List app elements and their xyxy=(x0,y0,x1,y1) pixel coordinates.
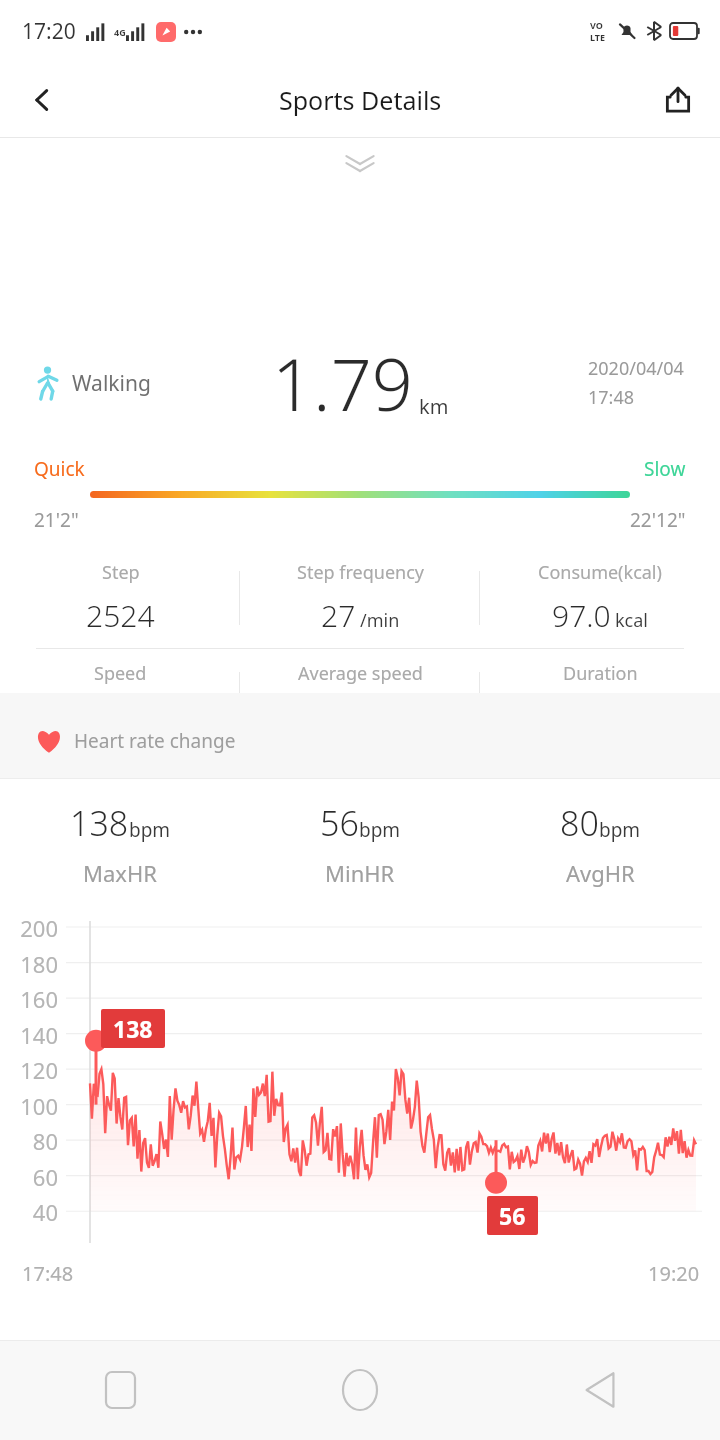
button[interactable]: Share xyxy=(650,72,706,128)
button[interactable]: Recents xyxy=(0,1340,240,1440)
button[interactable]: Expand xyxy=(332,146,388,182)
staticText: 2020/04/04 xyxy=(588,356,684,381)
staticText: 2524 xyxy=(86,595,155,636)
staticText: km xyxy=(419,393,449,420)
staticText: AvgHR xyxy=(566,858,635,888)
staticText: MaxHR xyxy=(83,858,157,888)
staticText: Average speed xyxy=(298,661,423,686)
staticText: 19:20 xyxy=(648,1260,700,1287)
staticText: 17:48 xyxy=(588,385,635,410)
staticText: 40 xyxy=(0,1197,58,1227)
staticText: kcal xyxy=(615,608,648,633)
staticText: 80 xyxy=(560,800,599,846)
staticText: 180 xyxy=(0,949,58,979)
staticText: 138 xyxy=(113,1013,153,1044)
staticText: Quick xyxy=(34,456,85,482)
staticText: Duration xyxy=(563,661,638,686)
staticText: 138 xyxy=(70,800,129,846)
staticText: VO xyxy=(590,19,603,31)
staticText: bpm xyxy=(599,817,641,843)
staticText: 21'22" xyxy=(58,696,144,737)
staticText: 17:20 xyxy=(22,17,76,46)
staticText: 56 xyxy=(320,800,359,846)
staticText: /min xyxy=(360,608,400,633)
staticText: 160 xyxy=(0,984,58,1014)
staticText: Walking xyxy=(72,369,151,398)
staticText: 140 xyxy=(0,1020,58,1050)
staticText: MinHR xyxy=(325,858,395,888)
staticText: 120 xyxy=(0,1055,58,1085)
staticText: /km xyxy=(148,709,182,734)
staticText: 97.0 xyxy=(552,595,611,636)
staticText: 200 xyxy=(0,913,58,943)
staticText: 4G xyxy=(114,26,126,38)
staticText: LTE xyxy=(590,31,606,43)
staticText: Speed xyxy=(94,661,147,686)
staticText: 80 xyxy=(0,1126,58,1156)
staticText: 1.79 xyxy=(272,334,413,432)
staticText: 22'12" xyxy=(630,507,686,533)
staticText: 17:48 xyxy=(22,1260,74,1287)
staticText: Step xyxy=(102,560,140,585)
button[interactable]: Back xyxy=(480,1340,720,1440)
button[interactable]: Back xyxy=(14,72,70,128)
button[interactable]: Home xyxy=(240,1340,480,1440)
staticText: Sports Details xyxy=(279,83,442,117)
staticText: 60 xyxy=(0,1162,58,1192)
staticText: Step frequency xyxy=(297,560,424,585)
staticText: 56 xyxy=(499,1200,526,1231)
staticText: 21'2" xyxy=(34,507,79,533)
staticText: bpm xyxy=(359,817,401,843)
staticText: bpm xyxy=(129,817,171,843)
staticText: Consume(kcal) xyxy=(538,560,662,585)
staticText: Slow xyxy=(644,456,686,482)
staticText: 27 xyxy=(321,595,356,636)
staticText: 100 xyxy=(0,1091,58,1121)
staticText: Heart rate change xyxy=(74,728,236,754)
